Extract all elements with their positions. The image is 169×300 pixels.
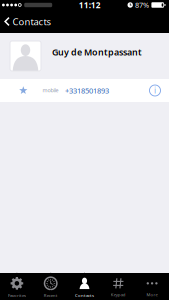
- staticText: 11:12: [79, 0, 101, 11]
- staticText: Favorites: [8, 292, 26, 298]
- button[interactable]: Contacts: [68, 273, 101, 300]
- staticText: mobile: [43, 87, 59, 94]
- staticText: Recent: [44, 292, 58, 298]
- button[interactable]: Keypad: [101, 273, 135, 300]
- staticText: More: [147, 292, 158, 297]
- staticText: Guy de Montpassant: [52, 46, 142, 58]
- button[interactable]: More: [135, 273, 169, 300]
- button[interactable]: Contacts: [0, 10, 58, 33]
- staticText: +3318501893: [65, 85, 109, 96]
- staticText: i: [154, 85, 156, 96]
- button[interactable]: Favorites: [0, 273, 34, 300]
- staticText: Contacts: [75, 292, 94, 298]
- staticText: 87%: [135, 0, 149, 10]
- staticText: Keypad: [111, 292, 126, 297]
- staticText: Contacts: [12, 15, 51, 28]
- button[interactable]: Recent: [34, 273, 68, 300]
- button[interactable]: mobile: [0, 79, 169, 102]
